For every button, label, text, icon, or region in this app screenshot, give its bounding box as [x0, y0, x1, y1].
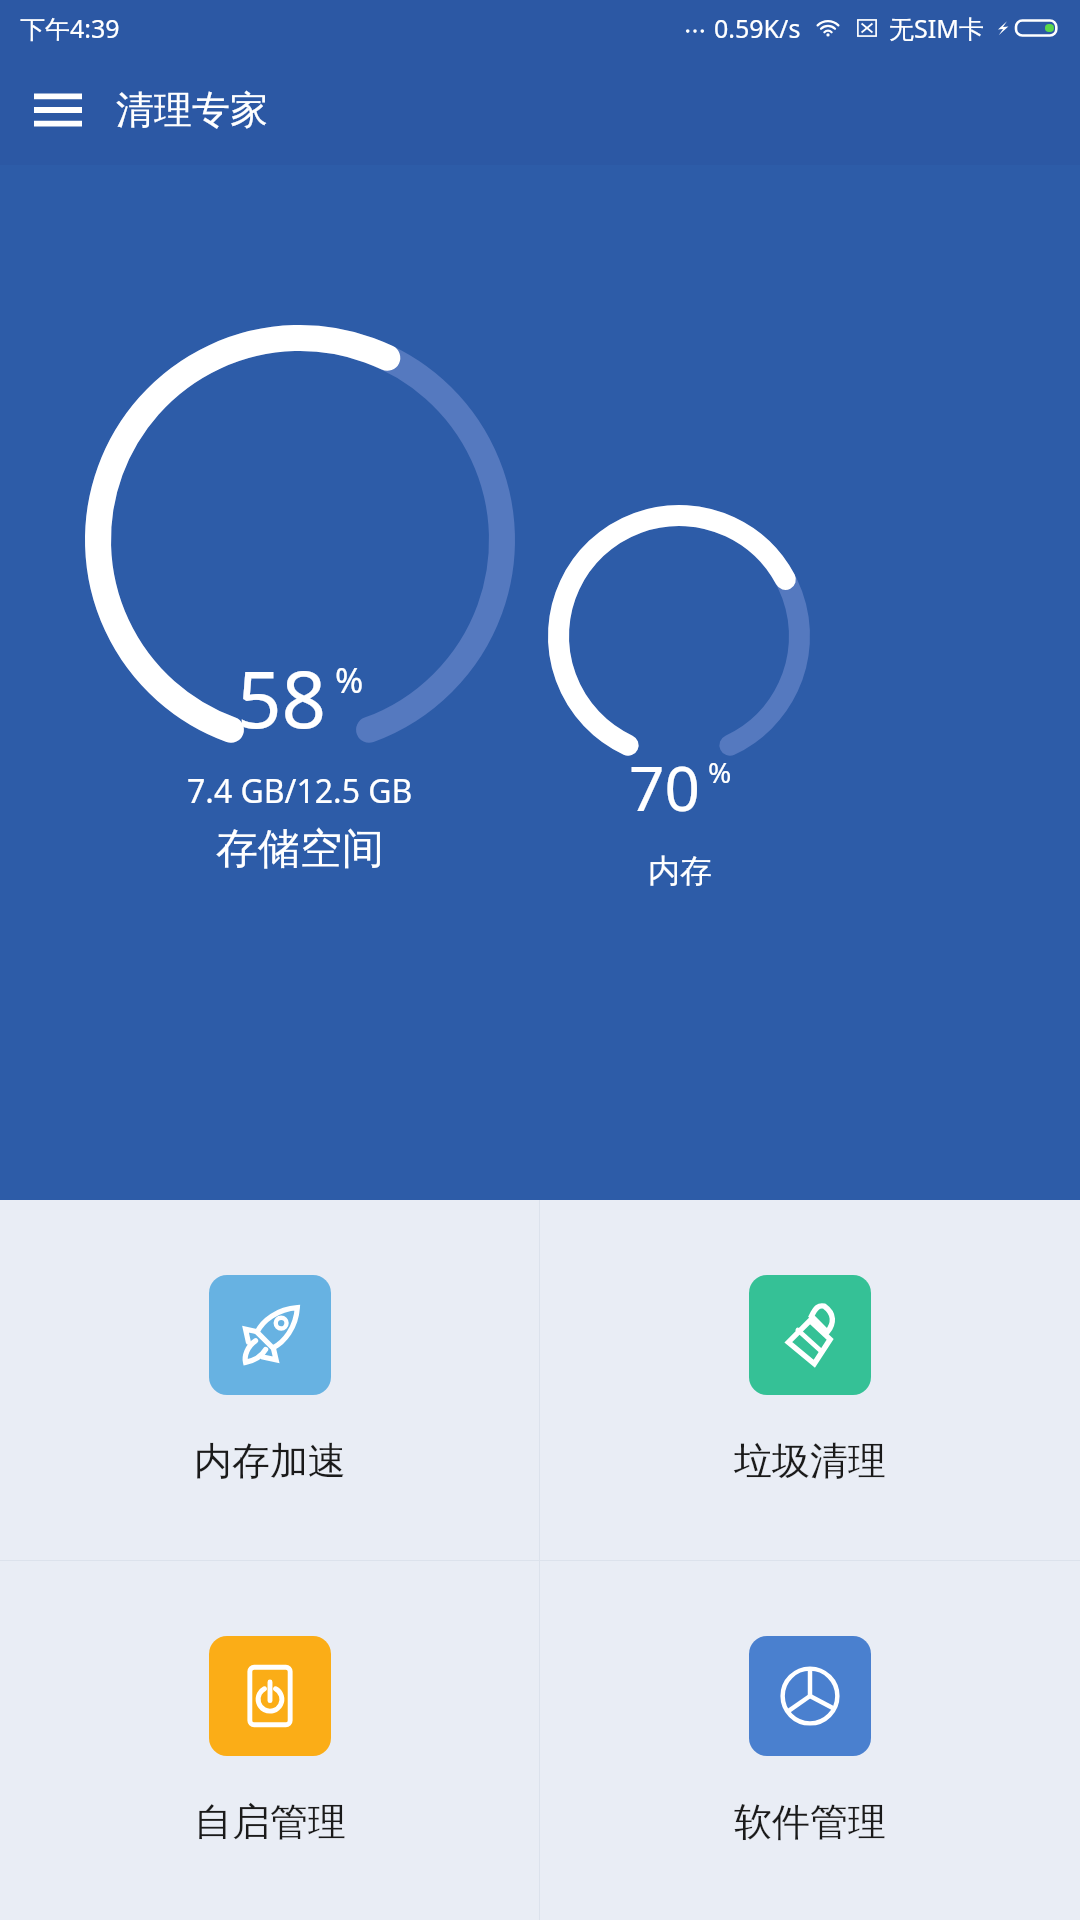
- button[interactable]: Menu: [22, 74, 94, 146]
- staticText: %: [708, 753, 732, 791]
- staticText: 下午4:39: [20, 11, 120, 45]
- staticText: %: [335, 657, 364, 703]
- staticText: 内存: [648, 851, 712, 891]
- button[interactable]: 垃圾清理: [540, 1200, 1080, 1560]
- staticText: 0.59K/s: [714, 11, 801, 45]
- staticText: 垃圾清理: [734, 1437, 886, 1485]
- staticText: 存储空间: [216, 823, 384, 876]
- button[interactable]: 存储空间 58%: [85, 325, 515, 755]
- button[interactable]: 软件管理: [540, 1561, 1080, 1920]
- staticText: 7.4 GB/12.5 GB: [187, 769, 413, 813]
- staticText: 无SIM卡: [889, 11, 984, 45]
- button[interactable]: 内存 70%: [548, 505, 810, 767]
- staticText: 自启管理: [194, 1798, 346, 1846]
- staticText: 内存加速: [194, 1437, 346, 1485]
- button[interactable]: 内存加速: [0, 1200, 539, 1560]
- staticText: 70: [629, 745, 700, 829]
- staticText: 清理专家: [116, 86, 268, 134]
- button[interactable]: 自启管理: [0, 1561, 539, 1920]
- staticText: 软件管理: [734, 1798, 886, 1846]
- staticText: 58: [237, 645, 327, 751]
